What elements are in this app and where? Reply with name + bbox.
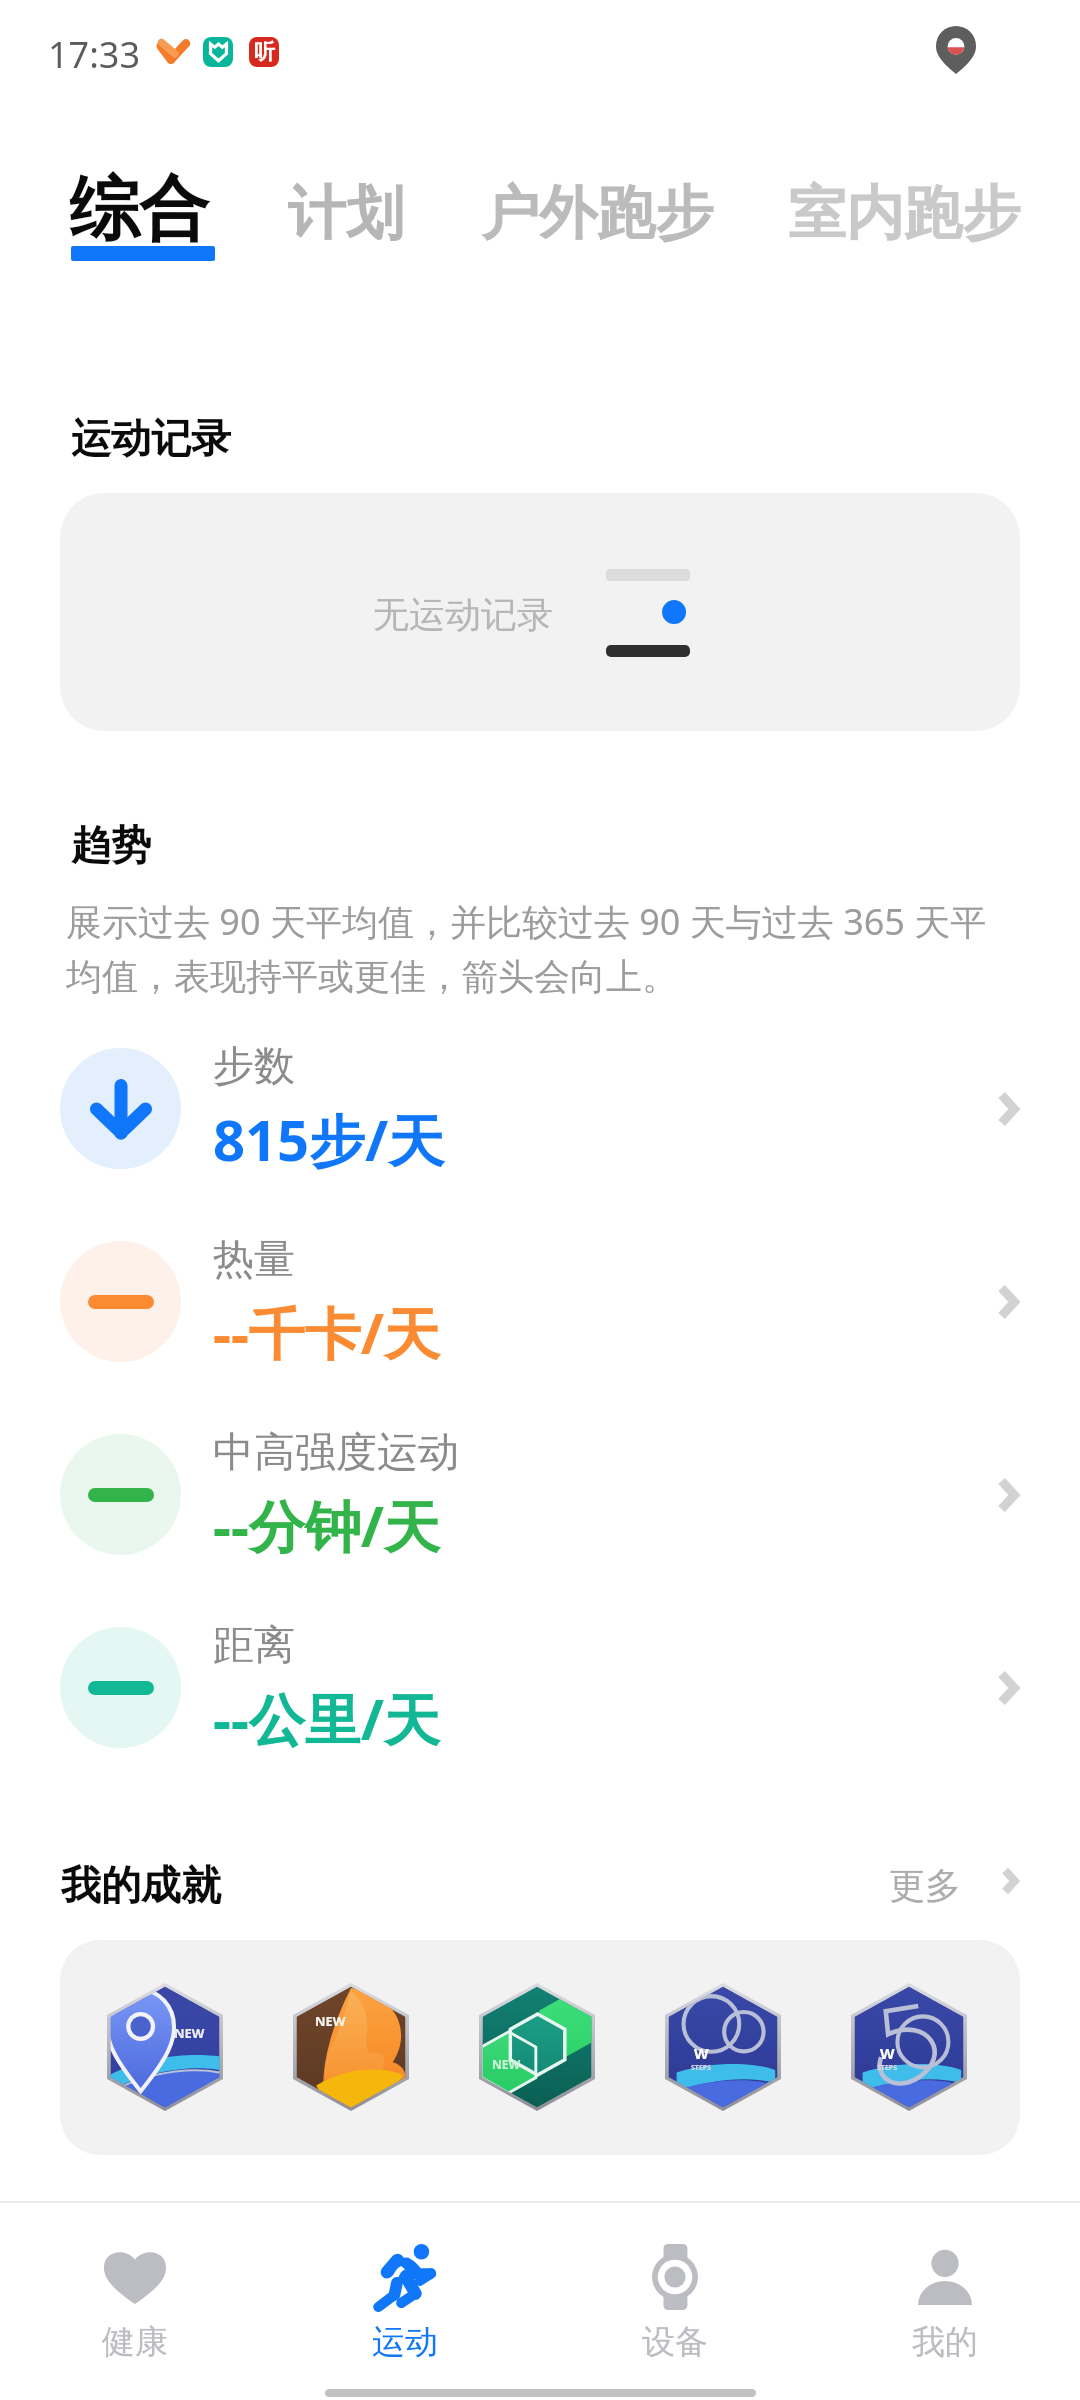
staticText: STEPS [877, 2063, 898, 2073]
button[interactable]: 中高强度运动 [0, 1398, 1080, 1591]
button[interactable]: 步数 [0, 1012, 1080, 1205]
staticText: 更多 [889, 1863, 961, 1908]
button[interactable]: 更多 [889, 1863, 1016, 1908]
other: Location [936, 26, 976, 74]
staticText: 趋势 [71, 820, 151, 870]
button[interactable]: 计划 [288, 177, 404, 250]
button[interactable]: 热量 [0, 1205, 1080, 1398]
staticText: --公里/天 [213, 1680, 441, 1756]
staticText: 运动记录 [71, 413, 231, 463]
staticText: W [880, 2043, 895, 2063]
button[interactable]: 室内跑步 [788, 177, 1020, 250]
staticText: NEW [174, 2024, 205, 2042]
staticText: 中高强度运动 [213, 1427, 459, 1479]
button[interactable]: 我的 [810, 2203, 1080, 2389]
staticText: 17:33 [48, 30, 141, 79]
button[interactable]: 无运动记录 [60, 493, 1020, 731]
button[interactable]: 健康 [0, 2203, 270, 2389]
button[interactable]: 运动 [270, 2203, 540, 2389]
staticText: 运动 [372, 2321, 438, 2363]
staticText: 健康 [102, 2321, 168, 2363]
button[interactable]: 距离 [0, 1591, 1080, 1784]
staticText: --千卡/天 [213, 1294, 441, 1370]
button[interactable]: 综合 [69, 166, 213, 269]
staticText: NEW [315, 2012, 346, 2030]
staticText: NEW [492, 2056, 521, 2072]
staticText: 距离 [213, 1620, 295, 1672]
button[interactable]: Achievement badge [851, 1983, 967, 2111]
staticText: 815步/天 [213, 1101, 445, 1177]
staticText: 听 [254, 39, 275, 65]
staticText: --分钟/天 [213, 1487, 441, 1563]
button[interactable]: Achievement badge [293, 1983, 409, 2111]
staticText: 热量 [213, 1234, 295, 1286]
button[interactable]: Achievement badge [665, 1983, 781, 2111]
staticText: 步数 [213, 1041, 295, 1093]
button[interactable]: 户外跑步 [481, 177, 713, 250]
staticText: STEPS [691, 2063, 712, 2073]
staticText: 展示过去 90 天平均值，并比较过去 90 天与过去 365 天平均值，表现持平… [66, 893, 1006, 1003]
staticText: 无运动记录 [373, 592, 553, 637]
button[interactable]: Achievement badge [479, 1983, 595, 2111]
button[interactable]: Achievement badge [107, 1983, 223, 2111]
staticText: 我的 [912, 2321, 978, 2363]
staticText: W [694, 2043, 709, 2063]
staticText: 设备 [642, 2321, 708, 2363]
staticText: 我的成就 [61, 1860, 221, 1910]
button[interactable]: 设备 [540, 2203, 810, 2389]
staticText: 综合 [69, 166, 209, 254]
